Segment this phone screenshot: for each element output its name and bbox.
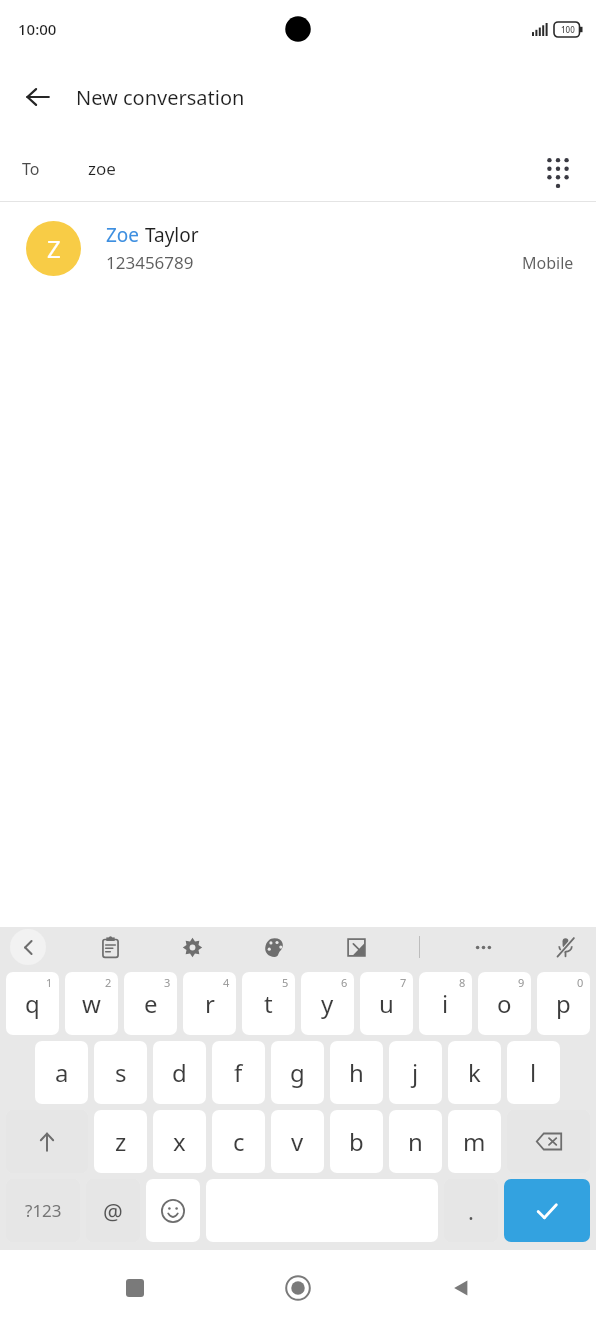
button[interactable]: s [94,1041,147,1104]
staticText: h [349,1056,364,1089]
button[interactable]: d [153,1041,206,1104]
staticText: u [379,987,394,1020]
button[interactable]: Emoji [146,1179,200,1242]
button[interactable]: k [448,1041,501,1104]
button[interactable]: Settings [173,928,211,966]
staticText: 6 [341,975,348,990]
staticText: Z [47,232,61,265]
staticText: . [468,1196,474,1226]
staticText: g [290,1056,305,1089]
staticText: 4 [223,975,230,990]
staticText: 123456789 [106,251,194,274]
button[interactable]: o [478,972,531,1035]
button[interactable]: j [389,1041,442,1104]
staticText: o [497,987,512,1020]
staticText: b [349,1125,364,1158]
staticText: e [144,987,158,1020]
staticText: @ [103,1196,123,1226]
staticText: y [321,987,334,1020]
button[interactable]: u [360,972,413,1035]
staticText: 2 [105,975,112,990]
button[interactable]: Backspace [507,1110,590,1173]
staticText: Taylor [140,222,199,248]
staticText: zoe [88,157,116,180]
button[interactable]: z [94,1110,147,1173]
staticText: s [115,1056,127,1089]
staticText: 9 [518,975,525,990]
staticText: d [172,1056,187,1089]
staticText: n [408,1125,423,1158]
staticText: i [442,987,449,1020]
button[interactable]: Clipboard [91,928,129,966]
button[interactable]: . [444,1179,498,1242]
button[interactable]: Recent apps [107,1260,163,1316]
button[interactable]: w [65,972,118,1035]
staticText: q [25,987,40,1020]
staticText: ?123 [25,1199,62,1222]
button[interactable]: @ [86,1179,140,1242]
staticText: f [234,1056,243,1089]
staticText: 1 [46,975,53,990]
button[interactable]: x [153,1110,206,1173]
button[interactable]: Done [504,1179,590,1242]
staticText: 8 [459,975,466,990]
button[interactable]: Voice input off [546,928,584,966]
button[interactable]: p [537,972,590,1035]
staticText: p [556,987,571,1020]
staticText: a [55,1056,69,1089]
staticText: l [530,1056,537,1089]
button[interactable]: Home [270,1260,326,1316]
button[interactable]: Z [0,202,596,294]
button[interactable]: n [389,1110,442,1173]
button[interactable]: m [448,1110,501,1173]
button[interactable]: e [124,972,177,1035]
staticText: Zoe [106,222,140,248]
button[interactable]: i [419,972,472,1035]
button[interactable]: Back [433,1260,489,1316]
button[interactable]: y [301,972,354,1035]
staticText: w [82,987,101,1020]
staticText: v [291,1125,304,1158]
staticText: z [115,1125,127,1158]
button[interactable]: q [6,972,59,1035]
button[interactable]: a [35,1041,88,1104]
staticText: x [173,1125,186,1158]
button[interactable]: v [271,1110,324,1173]
staticText: 10:00 [18,19,57,39]
button[interactable]: b [330,1110,383,1173]
button[interactable]: More options [464,928,502,966]
button[interactable]: Resize keyboard [337,928,375,966]
button[interactable]: Shift [6,1110,88,1173]
staticText: r [205,987,215,1020]
button[interactable]: c [212,1110,265,1173]
button[interactable]: t [242,972,295,1035]
button[interactable]: l [507,1041,560,1104]
button[interactable]: f [212,1041,265,1104]
button[interactable]: Themes [255,928,293,966]
staticText: 100 [561,24,575,35]
staticText: k [468,1056,481,1089]
button[interactable]: Back [12,71,64,123]
staticText: Mobile [522,252,574,274]
staticText: 7 [400,975,407,990]
staticText: 0 [577,975,584,990]
button[interactable]: g [271,1041,324,1104]
staticText: j [412,1056,419,1089]
staticText: 3 [164,975,171,990]
button[interactable]: Expand toolbar [10,929,46,965]
staticText: c [233,1125,245,1158]
staticText: m [463,1125,486,1158]
button[interactable]: Dialpad [534,145,582,193]
staticText: To [22,158,40,180]
button[interactable]: r [183,972,236,1035]
button[interactable]: h [330,1041,383,1104]
staticText: t [264,987,273,1020]
button[interactable]: ?123 [6,1179,80,1242]
staticText: New conversation [76,84,245,111]
staticText: 5 [282,975,289,990]
